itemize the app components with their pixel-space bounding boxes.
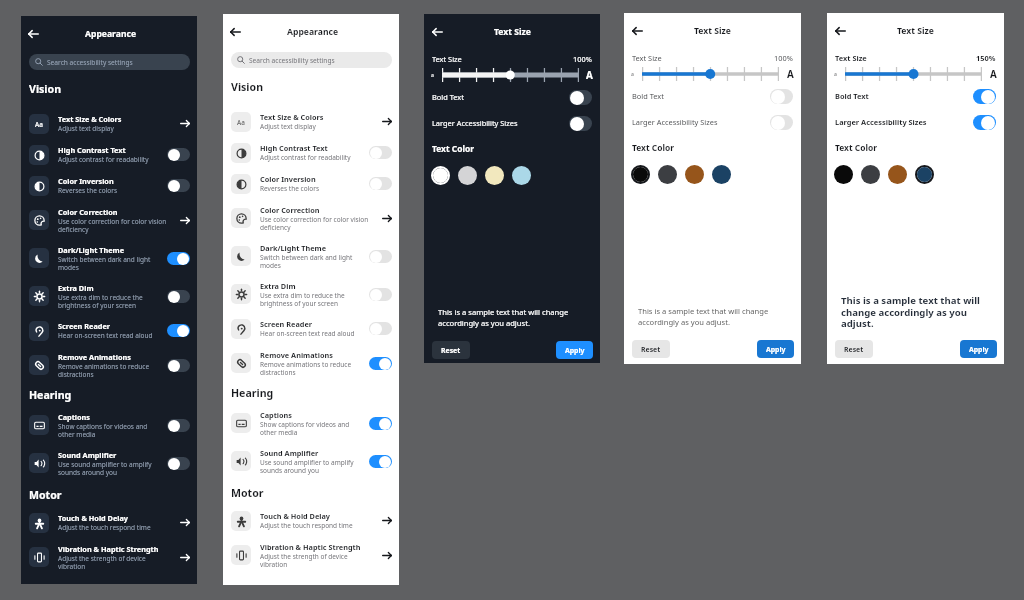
staticText: Hearing bbox=[231, 386, 274, 400]
button[interactable]: Back bbox=[230, 28, 241, 36]
staticText: Text Color bbox=[835, 142, 877, 153]
button[interactable] bbox=[369, 455, 392, 468]
staticText: Vision bbox=[231, 80, 264, 94]
button[interactable]: Dark/Light Theme bbox=[223, 237, 399, 275]
button[interactable]: Remove Animations bbox=[21, 346, 197, 384]
button[interactable]: Back bbox=[835, 27, 846, 35]
staticText: Show captions for videos and other media bbox=[260, 420, 364, 437]
button[interactable]: High Contrast Text bbox=[21, 139, 197, 170]
button[interactable]: Apply bbox=[757, 340, 794, 358]
button[interactable]: Color Correction bbox=[223, 199, 399, 237]
button[interactable]: Vibration & Haptic Strength bbox=[382, 552, 392, 559]
button[interactable] bbox=[369, 177, 392, 190]
staticText: Appearance bbox=[287, 26, 339, 38]
button[interactable]: Vibration & Haptic Strength bbox=[180, 554, 190, 561]
button[interactable]: Color Inversion bbox=[223, 168, 399, 199]
button[interactable]: Reset bbox=[432, 341, 470, 359]
button[interactable] bbox=[167, 457, 190, 470]
button[interactable]: Sound Amplifier bbox=[21, 444, 197, 482]
button[interactable]: Bold Text bbox=[432, 89, 592, 105]
button[interactable]: Touch & Hold Delay bbox=[382, 517, 392, 524]
button[interactable]: Vibration & Haptic Strength bbox=[21, 538, 197, 576]
button[interactable] bbox=[167, 359, 190, 372]
button[interactable]: Captions bbox=[21, 406, 197, 444]
button[interactable]: Text color 0 bbox=[631, 165, 650, 184]
button[interactable]: Text color 2 bbox=[888, 165, 907, 184]
button[interactable]: Back bbox=[632, 27, 643, 35]
button[interactable]: Remove Animations bbox=[223, 344, 399, 382]
button[interactable]: Apply bbox=[556, 341, 593, 359]
button[interactable]: Text color 2 bbox=[485, 166, 504, 185]
button[interactable]: Larger Accessibility Sizes bbox=[835, 114, 996, 130]
button[interactable]: Extra Dim bbox=[21, 277, 197, 315]
button[interactable]: Reset bbox=[835, 340, 873, 358]
button[interactable] bbox=[167, 324, 190, 337]
button[interactable]: Back bbox=[432, 28, 443, 36]
staticText: 100% bbox=[573, 54, 592, 64]
button[interactable]: Text color 0 bbox=[431, 166, 450, 185]
button[interactable]: Screen Reader bbox=[21, 315, 197, 346]
staticText: Switch between dark and light modes bbox=[58, 255, 162, 272]
button[interactable]: Text size slider bbox=[442, 68, 579, 82]
button[interactable]: Aa bbox=[21, 108, 197, 139]
button[interactable] bbox=[369, 146, 392, 159]
button[interactable]: Screen Reader bbox=[223, 313, 399, 344]
button[interactable]: Color Correction bbox=[382, 215, 392, 222]
button[interactable]: Color Correction bbox=[21, 201, 197, 239]
button[interactable] bbox=[369, 250, 392, 263]
staticText: Remove animations to reduce distractions bbox=[260, 360, 364, 377]
button[interactable]: Bold Text bbox=[632, 88, 793, 104]
button[interactable]: Text color 1 bbox=[458, 166, 477, 185]
button[interactable]: Search accessibility settings bbox=[231, 52, 392, 68]
button[interactable]: Larger Accessibility Sizes bbox=[632, 114, 793, 130]
button[interactable]: Larger Accessibility Sizes bbox=[432, 115, 592, 131]
button[interactable]: Text color 1 bbox=[658, 165, 677, 184]
staticText: Text Color bbox=[632, 142, 674, 153]
button[interactable]: Color Inversion bbox=[21, 170, 197, 201]
button[interactable]: Vibration & Haptic Strength bbox=[223, 536, 399, 574]
button[interactable] bbox=[369, 417, 392, 430]
button[interactable]: Text Size & Colors bbox=[180, 120, 190, 127]
button[interactable]: Touch & Hold Delay bbox=[223, 505, 399, 536]
button[interactable] bbox=[369, 322, 392, 335]
button[interactable]: Touch & Hold Delay bbox=[180, 519, 190, 526]
button[interactable]: Extra Dim bbox=[223, 275, 399, 313]
button[interactable]: Text color 3 bbox=[712, 165, 731, 184]
button[interactable]: Back bbox=[28, 30, 39, 38]
button[interactable]: Text color 3 bbox=[915, 165, 934, 184]
staticText: Adjust the touch respond time bbox=[58, 523, 151, 532]
staticText: Bold Text bbox=[432, 92, 464, 102]
button[interactable]: Captions bbox=[223, 404, 399, 442]
button[interactable] bbox=[167, 252, 190, 265]
button[interactable] bbox=[167, 419, 190, 432]
staticText: A bbox=[990, 68, 997, 81]
button[interactable]: Color Correction bbox=[180, 217, 190, 224]
button[interactable]: Text color 2 bbox=[685, 165, 704, 184]
button[interactable]: Dark/Light Theme bbox=[21, 239, 197, 277]
staticText: Reverses the colors bbox=[260, 184, 319, 193]
button[interactable]: Text color 0 bbox=[834, 165, 853, 184]
button[interactable]: Text color 3 bbox=[512, 166, 531, 185]
staticText: A bbox=[787, 68, 794, 81]
staticText: Hearing bbox=[29, 388, 72, 402]
button[interactable]: Text size slider bbox=[845, 67, 982, 81]
button[interactable]: Text size slider bbox=[642, 67, 779, 81]
button[interactable] bbox=[167, 179, 190, 192]
button[interactable] bbox=[369, 288, 392, 301]
staticText: Vision bbox=[29, 82, 62, 96]
button[interactable]: Aa bbox=[223, 106, 399, 137]
staticText: High Contrast Text bbox=[58, 145, 126, 155]
button[interactable]: Apply bbox=[960, 340, 997, 358]
staticText: Use extra dim to reduce the brightness o… bbox=[260, 291, 364, 308]
button[interactable]: Bold Text bbox=[835, 88, 996, 104]
button[interactable]: High Contrast Text bbox=[223, 137, 399, 168]
button[interactable]: Touch & Hold Delay bbox=[21, 507, 197, 538]
button[interactable] bbox=[369, 357, 392, 370]
button[interactable] bbox=[167, 148, 190, 161]
button[interactable]: Reset bbox=[632, 340, 670, 358]
button[interactable] bbox=[167, 290, 190, 303]
button[interactable]: Search accessibility settings bbox=[29, 54, 190, 70]
button[interactable]: Sound Amplifier bbox=[223, 442, 399, 480]
button[interactable]: Text Size & Colors bbox=[382, 118, 392, 125]
button[interactable]: Text color 1 bbox=[861, 165, 880, 184]
